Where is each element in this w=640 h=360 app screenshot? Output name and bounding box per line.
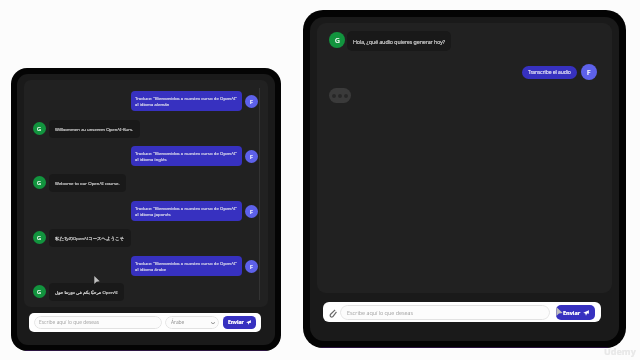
staticText: Traduce: "Bienvenidos a nuestro curso de… — [135, 150, 239, 162]
staticText: G — [37, 234, 42, 241]
staticText: Enviar — [228, 319, 244, 326]
staticText: مرحبًا بكم في دورتنا حول OpenAI — [55, 289, 118, 295]
button[interactable]: Escribe aquí lo que deseas — [340, 305, 550, 320]
staticText: F — [587, 68, 591, 77]
staticText: F — [250, 263, 253, 270]
button[interactable]: مرحبًا بكم في دورتنا حول OpenAI — [49, 283, 124, 301]
button[interactable]: Traduce: "Bienvenidos a nuestro curso de… — [131, 256, 242, 276]
staticText: Árabe — [171, 319, 185, 326]
staticText: Traduce: "Bienvenidos a nuestro curso de… — [135, 260, 239, 272]
staticText: G — [335, 36, 340, 45]
staticText: Escribe aquí lo que deseas — [347, 309, 414, 316]
button[interactable]: 私たちのOpenAIコースへようこそ — [49, 229, 131, 247]
button[interactable]: Enviar — [223, 316, 256, 329]
staticText: G — [37, 125, 42, 132]
button[interactable]: Traduce: "Bienvenidos a nuestro curso de… — [131, 91, 242, 111]
staticText: Udemy — [604, 345, 636, 357]
button[interactable]: Willkommen zu unserem OpenAI-Kurs. — [49, 120, 140, 138]
staticText: F — [250, 153, 253, 160]
staticText: Hola, ¿qué audio quieres generar hoy? — [353, 38, 446, 45]
button[interactable]: Hola, ¿qué audio quieres generar hoy? — [347, 31, 451, 51]
staticText: Traduce: "Bienvenidos a nuestro curso de… — [135, 95, 239, 107]
staticText: Transcribe el audio — [528, 69, 571, 76]
button[interactable]: Transcribe el audio — [522, 66, 577, 79]
staticText: Welcome to our OpenAI course. — [55, 180, 120, 186]
button[interactable]: Traduce: "Bienvenidos a nuestro curso de… — [131, 201, 242, 221]
button[interactable]: Escribe aquí lo que deseas — [34, 316, 162, 329]
staticText: F — [250, 98, 253, 105]
button[interactable]: Welcome to our OpenAI course. — [49, 174, 126, 192]
staticText: 私たちのOpenAIコースへようこそ — [55, 235, 125, 241]
staticText: Escribe aquí lo que deseas — [39, 319, 100, 326]
staticText: G — [37, 288, 42, 295]
button[interactable]: Árabe — [165, 316, 219, 329]
staticText: F — [250, 208, 253, 215]
staticText: Willkommen zu unserem OpenAI-Kurs. — [55, 126, 134, 132]
staticText: Traduce: "Bienvenidos a nuestro curso de… — [135, 205, 239, 217]
button[interactable]: Attach file — [327, 307, 338, 318]
button[interactable]: Enviar — [556, 305, 595, 320]
staticText: Enviar — [563, 309, 581, 316]
button[interactable]: Traduce: "Bienvenidos a nuestro curso de… — [131, 146, 242, 166]
staticText: G — [37, 179, 42, 186]
